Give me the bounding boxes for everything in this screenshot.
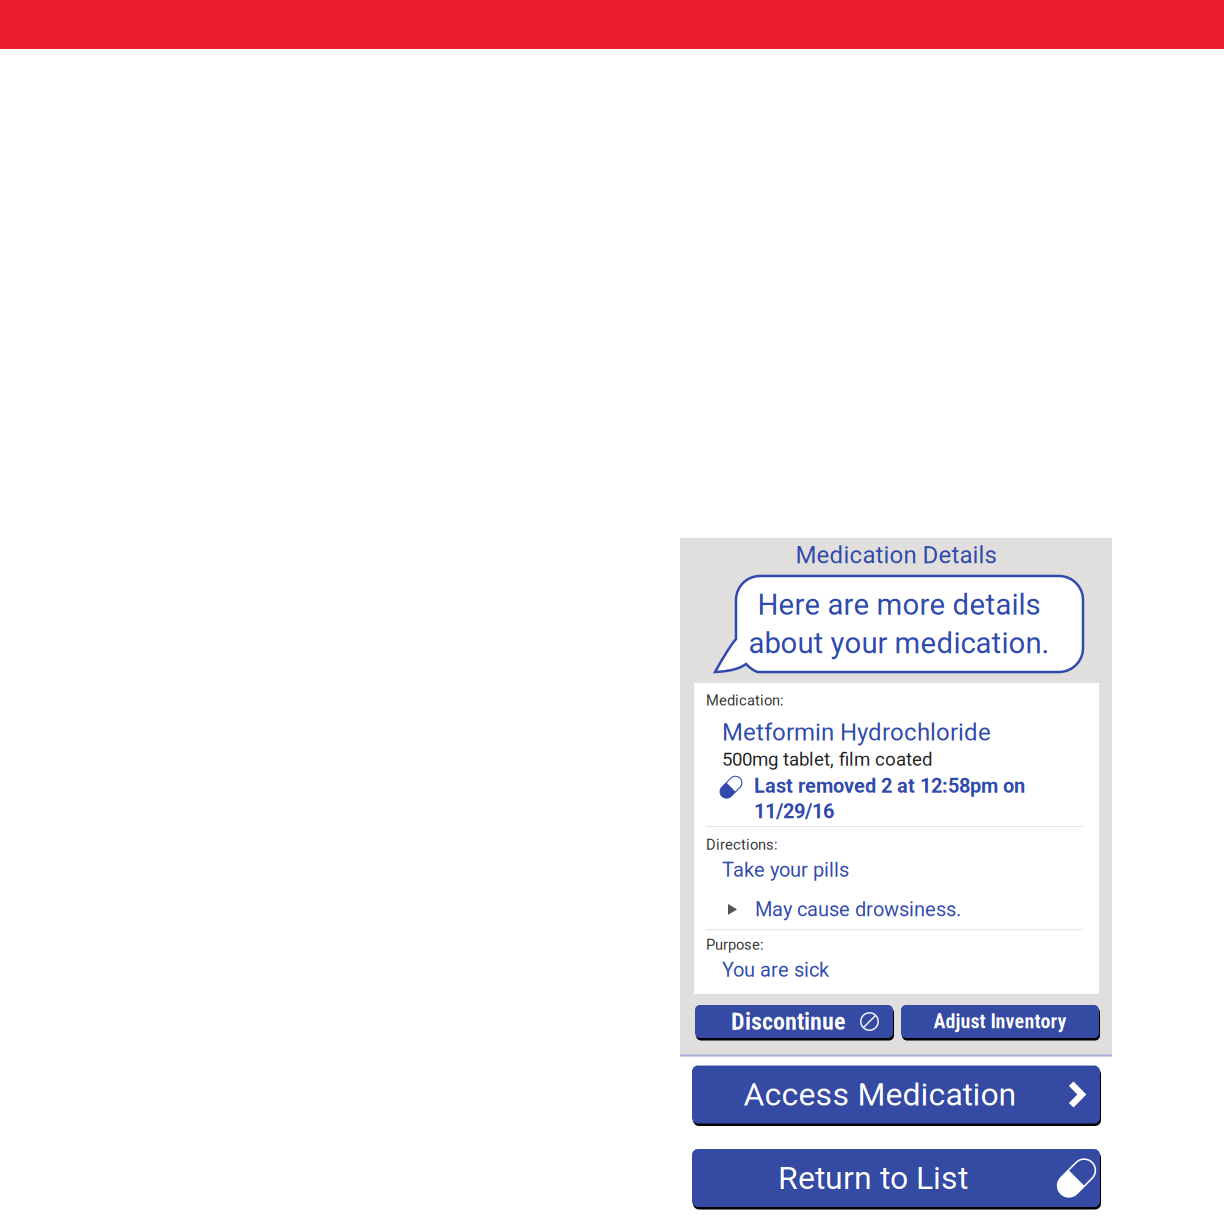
staticText: about your medication.: [748, 626, 1049, 660]
staticText: Take your pills: [722, 858, 849, 882]
staticText: Medication Details: [795, 541, 996, 569]
staticText: May cause drowsiness.: [755, 898, 961, 921]
staticText: Discontinue: [731, 1007, 845, 1035]
staticText: Directions:: [706, 836, 778, 853]
staticText: 11/29/16: [754, 800, 834, 823]
staticText: Return to List: [778, 1159, 968, 1197]
staticText: Medication:: [706, 692, 784, 709]
staticText: Metformin Hydrochloride: [722, 718, 991, 746]
staticText: Here are more details: [757, 588, 1040, 622]
button[interactable]: Return to List: [692, 1149, 1101, 1209]
staticText: Last removed 2 at 12:58pm on: [754, 774, 1025, 798]
staticText: Adjust Inventory: [933, 1010, 1066, 1033]
button[interactable]: Discontinue: [695, 1005, 894, 1040]
staticText: 500mg tablet, film coated: [722, 748, 933, 770]
button[interactable]: Adjust Inventory: [901, 1005, 1100, 1040]
staticText: You are sick: [722, 958, 829, 982]
button[interactable]: Access Medication: [692, 1065, 1101, 1126]
staticText: Access Medication: [743, 1076, 1016, 1113]
staticText: Purpose:: [706, 936, 764, 953]
